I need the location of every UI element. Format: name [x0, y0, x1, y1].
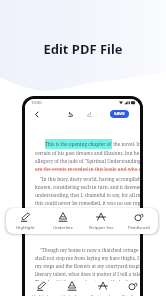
button[interactable]: SAVE — [110, 110, 129, 118]
button[interactable]: Undo — [63, 107, 77, 121]
staticText: This is the opening chapter of — [45, 141, 112, 147]
staticText: Highlight — [32, 293, 51, 296]
staticText: this could never be remedied, it was no … — [35, 200, 140, 206]
staticText: Underline — [62, 293, 82, 296]
button[interactable]: Paintbrush — [118, 281, 140, 296]
staticText: are the events recorded in this book; an… — [35, 166, 140, 172]
staticText: Edit PDF File — [0, 40, 166, 58]
staticText: Stripper line — [91, 293, 116, 296]
staticText: The year Immn 'Worthy Readers: where thi… — [35, 295, 140, 296]
staticText: Paintbrush — [122, 293, 140, 296]
staticText: Stripper line — [89, 224, 114, 230]
staticText: "I decided then to make known to all how… — [35, 208, 140, 214]
button[interactable]: Underline — [44, 208, 82, 234]
button[interactable]: Redo — [82, 107, 96, 121]
staticText: "Though my home is now a thatched cottag… — [35, 247, 140, 253]
staticText: 10:00 — [31, 100, 42, 106]
staticText: my steps and the flowers at my courtyard… — [35, 263, 140, 269]
button[interactable]: Underline — [57, 281, 87, 296]
staticText: This should divert readers too and help … — [35, 279, 140, 285]
button[interactable]: Paintbrush — [120, 208, 158, 234]
staticText: certain of his past dreams and illusions… — [35, 150, 140, 156]
button[interactable]: Highlight — [26, 281, 56, 296]
staticText: literary talent, what does it matter if … — [35, 271, 140, 277]
staticText: SAVE — [114, 111, 125, 117]
staticText: known, considering each in turn, and it … — [35, 184, 140, 190]
staticText: the novel. In w — [112, 141, 140, 147]
staticText: understanding, that I, shameful to say, … — [35, 192, 140, 198]
staticText: Underline — [53, 224, 73, 230]
button[interactable]: Back — [29, 107, 43, 121]
staticText: shall not stop me from laying my bare th… — [35, 255, 140, 261]
staticText: Paintbrush — [128, 224, 151, 230]
staticText: Yuean." — [35, 287, 53, 293]
staticText: Highlight — [16, 224, 35, 230]
staticText: "In this busy, dusty world, having accom… — [35, 176, 140, 182]
button[interactable]: Stripper line — [82, 208, 120, 234]
button[interactable]: Stripper line — [88, 281, 118, 296]
staticText: the Imperial favour and my ancestors' vi… — [35, 216, 140, 222]
button[interactable]: Highlight — [6, 208, 44, 234]
staticText: allegory of the jade of "Spiritual Under… — [35, 158, 140, 164]
